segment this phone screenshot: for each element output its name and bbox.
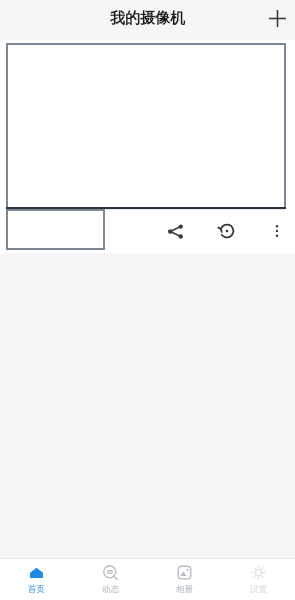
button[interactable]: Camera preview [6, 43, 286, 209]
button[interactable]: 设置 [221, 559, 295, 600]
button[interactable]: Thumbnail [6, 209, 105, 250]
button[interactable]: Add camera [259, 0, 295, 36]
staticText: 相册 [176, 584, 193, 595]
button[interactable]: 首页 [0, 559, 73, 600]
button[interactable]: History [212, 216, 242, 246]
staticText: 我的摄像机 [110, 9, 185, 28]
button[interactable]: 相册 [147, 559, 221, 600]
button[interactable]: More options [262, 216, 292, 246]
staticText: 设置 [250, 584, 267, 595]
staticText: 动态 [102, 584, 119, 595]
button[interactable]: 动态 [73, 559, 147, 600]
staticText: 首页 [28, 584, 45, 595]
button[interactable]: Share [160, 216, 190, 246]
